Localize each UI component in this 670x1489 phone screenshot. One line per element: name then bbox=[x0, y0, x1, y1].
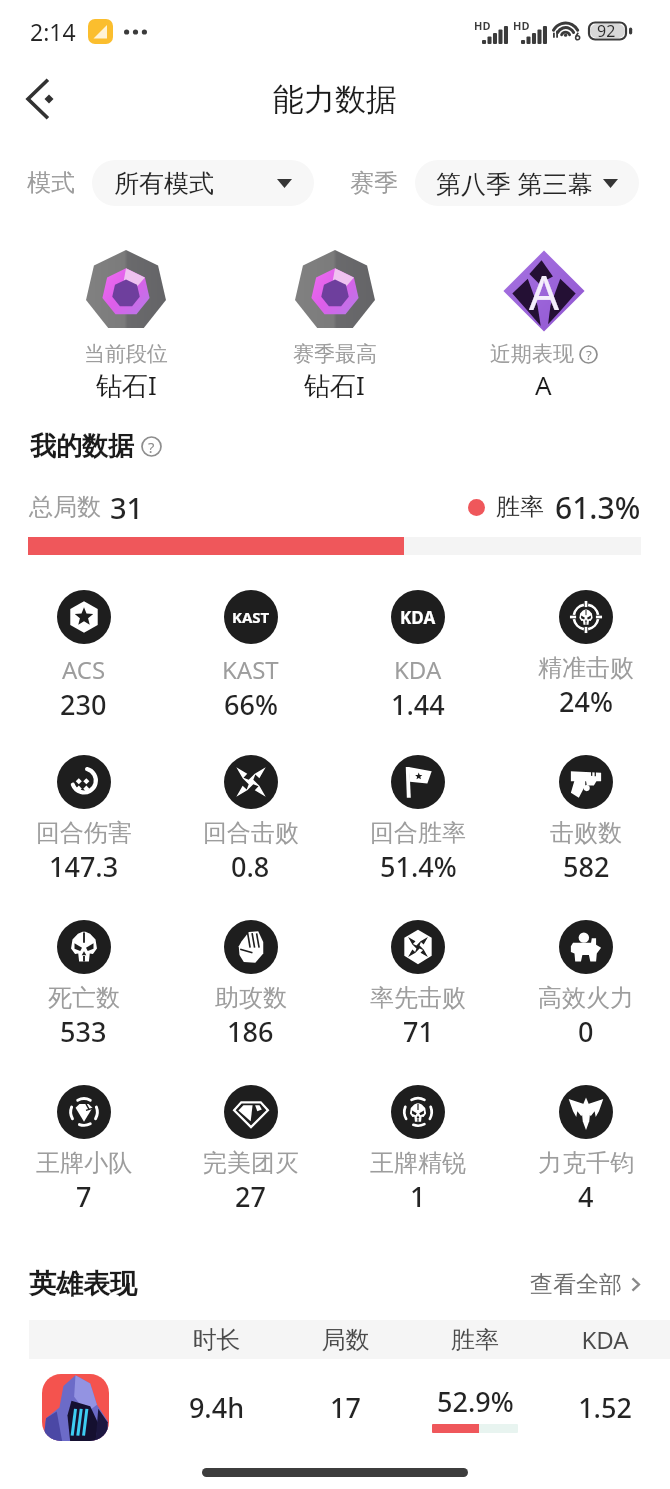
staticText: 胜率 bbox=[410, 1325, 540, 1355]
staticText: KAST bbox=[232, 607, 270, 627]
staticText: 王牌小队 bbox=[36, 1148, 132, 1178]
button[interactable]: Back bbox=[10, 69, 70, 129]
staticText: 所有模式 bbox=[114, 168, 214, 199]
button[interactable]: ACS bbox=[0, 574, 167, 723]
staticText: 27 bbox=[235, 1178, 266, 1215]
staticText: 17 bbox=[281, 1389, 410, 1426]
staticText: 时长 bbox=[152, 1325, 281, 1355]
staticText: 533 bbox=[60, 1013, 107, 1050]
staticText: 第八季 第三幕 bbox=[436, 166, 593, 200]
staticText: 24% bbox=[559, 683, 613, 720]
staticText: 查看全部 bbox=[530, 1270, 622, 1299]
button[interactable]: 高效火力 bbox=[502, 904, 670, 1050]
button[interactable]: 回合胜率 bbox=[334, 739, 502, 885]
staticText: 52.9% bbox=[437, 1383, 514, 1420]
staticText: KDA bbox=[394, 653, 442, 686]
staticText: 胜率 bbox=[496, 492, 544, 522]
button[interactable]: 王牌小队 bbox=[0, 1069, 167, 1215]
button[interactable]: 死亡数 bbox=[0, 904, 167, 1050]
button[interactable]: 所有模式 bbox=[92, 160, 314, 206]
staticText: 助攻数 bbox=[215, 983, 287, 1013]
staticText: 钻石I bbox=[96, 367, 157, 403]
button[interactable]: 赛季最高 bbox=[230, 230, 439, 403]
staticText: 完美团灭 bbox=[203, 1148, 299, 1178]
button[interactable]: 第八季 第三幕 bbox=[415, 160, 639, 206]
staticText: 总局数 bbox=[29, 492, 101, 522]
button[interactable]: 助攻数 bbox=[167, 904, 334, 1050]
staticText: 我的数据 bbox=[30, 430, 134, 463]
staticText: 近期表现 bbox=[490, 341, 574, 367]
button[interactable]: 率先击败 bbox=[334, 904, 502, 1050]
staticText: 赛季最高 bbox=[293, 341, 377, 367]
staticText: KDA bbox=[400, 606, 436, 629]
button[interactable]: 击败数 bbox=[502, 739, 670, 885]
staticText: 51.4% bbox=[380, 848, 457, 885]
staticText: HD bbox=[513, 18, 530, 33]
staticText: 92 bbox=[597, 20, 616, 42]
staticText: 死亡数 bbox=[48, 983, 120, 1013]
staticText: 1 bbox=[410, 1178, 426, 1215]
button[interactable]: 力克千钧 bbox=[502, 1069, 670, 1215]
staticText: 582 bbox=[563, 848, 610, 885]
button[interactable]: A bbox=[439, 230, 648, 402]
button[interactable]: 回合伤害 bbox=[0, 739, 167, 885]
staticText: 230 bbox=[60, 686, 107, 723]
button[interactable]: 完美团灭 bbox=[167, 1069, 334, 1215]
staticText: 186 bbox=[227, 1013, 274, 1050]
staticText: 回合伤害 bbox=[36, 818, 132, 848]
staticText: ACS bbox=[62, 653, 106, 686]
staticText: 精准击败 bbox=[538, 653, 634, 683]
staticText: 赛季 bbox=[350, 168, 398, 198]
staticText: 回合胜率 bbox=[370, 818, 466, 848]
staticText: 击败数 bbox=[550, 818, 622, 848]
button[interactable]: 9.4h bbox=[0, 1359, 670, 1456]
staticText: 4 bbox=[578, 1178, 594, 1215]
button[interactable]: 回合击败 bbox=[167, 739, 334, 885]
staticText: ? bbox=[586, 346, 592, 364]
staticText: KDA bbox=[540, 1323, 670, 1356]
staticText: 英雄表现 bbox=[29, 1267, 137, 1301]
staticText: 1.52 bbox=[540, 1389, 670, 1426]
staticText: 61.3% bbox=[555, 487, 641, 528]
button[interactable]: 查看全部 bbox=[530, 1270, 644, 1299]
staticText: ? bbox=[148, 437, 155, 457]
button[interactable]: KDA bbox=[334, 574, 502, 723]
staticText: 9.4h bbox=[152, 1389, 281, 1426]
staticText: 2:14 bbox=[30, 16, 76, 47]
staticText: 高效火力 bbox=[538, 983, 634, 1013]
button[interactable]: 当前段位 bbox=[22, 230, 230, 403]
staticText: 力克千钧 bbox=[538, 1148, 634, 1178]
staticText: 模式 bbox=[27, 168, 75, 198]
staticText: HD bbox=[474, 18, 491, 33]
staticText: 31 bbox=[110, 488, 144, 527]
staticText: 钻石I bbox=[304, 367, 365, 403]
staticText: 王牌精锐 bbox=[370, 1148, 466, 1178]
button[interactable]: KAST bbox=[167, 574, 334, 723]
staticText: 1.44 bbox=[391, 686, 445, 723]
button[interactable]: 精准击败 bbox=[502, 574, 670, 720]
button[interactable]: 王牌精锐 bbox=[334, 1069, 502, 1215]
staticText: 0 bbox=[578, 1013, 594, 1050]
staticText: 7 bbox=[76, 1178, 92, 1215]
staticText: 71 bbox=[403, 1013, 434, 1050]
staticText: 率先击败 bbox=[370, 983, 466, 1013]
staticText: 66% bbox=[224, 686, 278, 723]
staticText: 能力数据 bbox=[273, 80, 397, 119]
staticText: KAST bbox=[222, 653, 279, 686]
staticText: 147.3 bbox=[49, 848, 119, 885]
staticText: A bbox=[529, 260, 560, 324]
staticText: 局数 bbox=[281, 1325, 410, 1355]
staticText: 0.8 bbox=[231, 848, 270, 885]
staticText: A bbox=[535, 367, 552, 402]
staticText: 当前段位 bbox=[84, 341, 168, 367]
staticText: 回合击败 bbox=[203, 818, 299, 848]
